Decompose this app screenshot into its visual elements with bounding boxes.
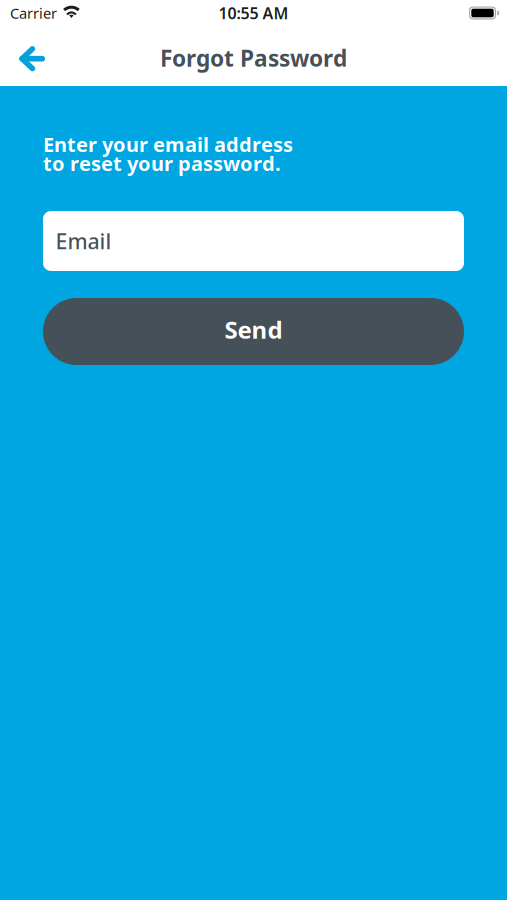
staticText: 10:55 AM — [218, 2, 288, 24]
button[interactable]: Email — [43, 211, 464, 271]
staticText: Enter your email address — [43, 131, 293, 158]
staticText: Forgot Password — [160, 43, 347, 73]
staticText: to reset your password. — [43, 150, 281, 177]
button[interactable]: Send — [43, 298, 464, 365]
staticText: Carrier — [10, 3, 57, 23]
staticText: Email — [55, 227, 111, 255]
staticText: Send — [224, 314, 282, 345]
button[interactable]: Back — [9, 27, 55, 84]
